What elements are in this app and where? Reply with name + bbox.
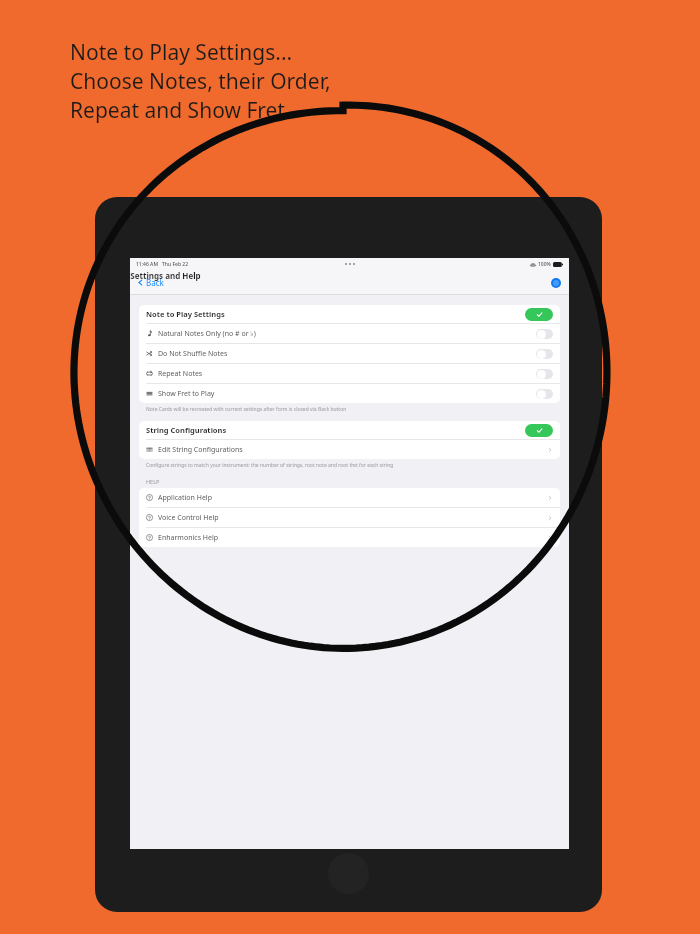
button[interactable]: Enharmonics Help [139, 528, 560, 547]
staticText: Do Not Shuffle Notes [158, 349, 228, 359]
button[interactable]: Show Fret to Play [536, 389, 553, 399]
button[interactable]: Enabled [525, 308, 553, 321]
staticText: Choose Notes, their Order, [70, 67, 331, 96]
staticText: Settings and Help [130, 270, 201, 281]
button[interactable]: Repeat Notes [536, 369, 553, 379]
staticText: Back [146, 277, 164, 288]
staticText: String Configurations [146, 425, 227, 435]
staticText: Repeat and Show Fret [70, 96, 285, 125]
button[interactable]: Enabled [525, 424, 553, 437]
button[interactable]: Note to Play Settings [139, 305, 560, 323]
button[interactable]: Voice Control Help [139, 508, 560, 527]
staticText: Show Fret to Play [158, 389, 215, 399]
staticText: Configure strings to match your instrume… [146, 462, 394, 469]
button[interactable]: Show Fret to Play [139, 384, 560, 403]
button[interactable]: Do Not Shuffle Notes [536, 349, 553, 359]
staticText: Edit String Configurations [158, 445, 243, 455]
button[interactable]: Account [550, 277, 562, 289]
staticText: Note Cards will be recreated with curren… [146, 406, 347, 413]
staticText: 11:46 AM [136, 261, 158, 268]
button[interactable]: Natural Notes Only (no # or ♭) [536, 329, 553, 339]
staticText: Thu Feb 22 [162, 261, 189, 268]
staticText: Enharmonics Help [158, 533, 219, 543]
button[interactable]: String Configurations [139, 421, 560, 439]
staticText: Natural Notes Only (no # or ♭) [158, 329, 256, 339]
staticText: 100% [538, 261, 551, 268]
staticText: Note to Play Settings [146, 309, 225, 319]
staticText: Application Help [158, 493, 212, 503]
button[interactable]: Back [134, 274, 167, 291]
staticText: Note to Play Settings... [70, 38, 293, 67]
staticText: Voice Control Help [158, 513, 219, 523]
button[interactable]: Application Help [139, 488, 560, 507]
staticText: HELP [146, 478, 160, 485]
button[interactable]: Repeat Notes [139, 364, 560, 383]
button[interactable]: Edit String Configurations [139, 440, 560, 459]
button[interactable]: Do Not Shuffle Notes [139, 344, 560, 363]
staticText: Repeat Notes [158, 369, 203, 379]
button[interactable]: Natural Notes Only (no # or ♭) [139, 324, 560, 343]
